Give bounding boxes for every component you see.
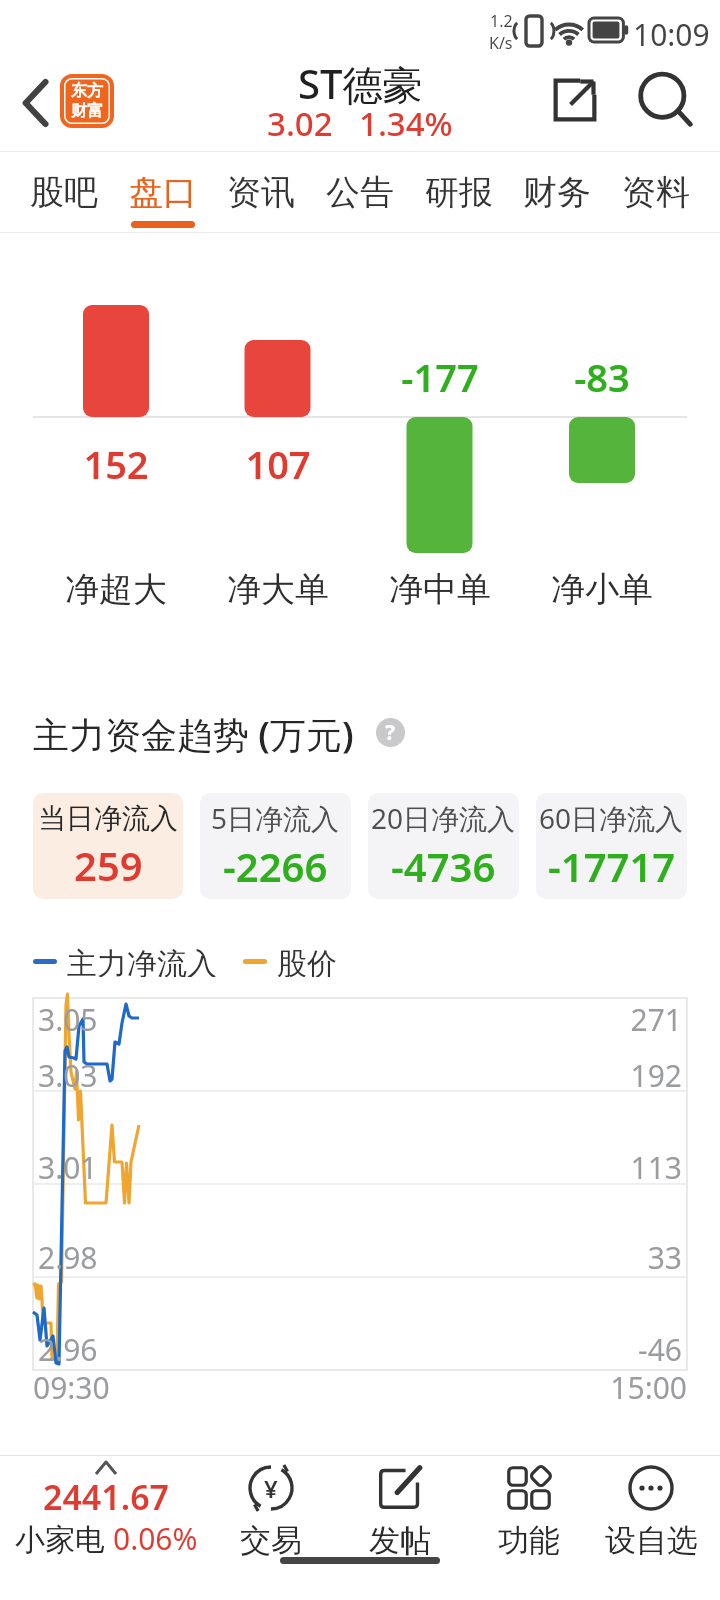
button[interactable]: 研报 <box>425 151 493 233</box>
staticText: 净中单 <box>360 568 520 611</box>
button[interactable]: 当日净流入 <box>33 793 183 899</box>
button[interactable]: 设自选 <box>592 1465 710 1560</box>
staticText: 净超大 <box>36 568 196 611</box>
staticText: 5日净流入 <box>211 799 340 837</box>
staticText: 10:09 <box>633 14 710 55</box>
button[interactable]: 5日净流入 <box>200 793 351 899</box>
staticText: 小家电 <box>15 1518 113 1559</box>
staticText: -4736 <box>391 839 496 893</box>
staticText: 净小单 <box>522 568 682 611</box>
button[interactable]: 资料 <box>622 151 690 233</box>
staticText: 20日净流入 <box>371 799 516 837</box>
staticText: 公告 <box>326 171 394 214</box>
staticText: 09:30 <box>33 1367 110 1408</box>
staticText: ? <box>385 718 396 747</box>
staticText: 3.01 <box>38 1147 98 1188</box>
button[interactable]: 2441.67 <box>0 1456 212 1566</box>
staticText: 0.06% <box>113 1518 198 1559</box>
staticText: 盘口 <box>129 171 197 214</box>
button[interactable]: 60日净流入 <box>536 793 687 899</box>
staticText: 271 <box>562 999 682 1040</box>
button[interactable]: 东方 <box>60 74 114 128</box>
staticText: 净大单 <box>198 568 358 611</box>
button[interactable]: 功能 <box>470 1465 588 1560</box>
staticText: 113 <box>562 1147 682 1188</box>
staticText: 当日净流入 <box>38 801 178 836</box>
staticText: K/s <box>489 32 513 54</box>
staticText: -2266 <box>223 839 328 893</box>
staticText: 152 <box>36 438 196 490</box>
button[interactable]: ? <box>376 718 405 747</box>
staticText: 33 <box>562 1237 682 1278</box>
button[interactable]: 发帖 <box>341 1465 459 1560</box>
staticText: 财务 <box>523 171 591 214</box>
button[interactable]: 财务 <box>523 151 591 233</box>
button[interactable]: ¥ <box>212 1465 330 1560</box>
button[interactable] <box>8 68 60 138</box>
staticText: 交易 <box>240 1521 302 1560</box>
staticText: ¥ <box>264 1472 278 1505</box>
staticText: 股吧 <box>30 171 98 214</box>
staticText: 东方 <box>71 81 103 101</box>
staticText: 3.02 <box>267 101 333 146</box>
button[interactable] <box>633 68 697 132</box>
staticText: -83 <box>522 351 682 403</box>
button[interactable]: 股吧 <box>30 151 98 233</box>
staticText: 15:00 <box>567 1367 687 1408</box>
staticText: 主力净流入 <box>67 945 217 977</box>
button[interactable]: 20日净流入 <box>368 793 519 899</box>
staticText: 功能 <box>498 1521 560 1560</box>
staticText: 192 <box>562 1055 682 1096</box>
staticText: 1.2 <box>490 10 513 32</box>
button[interactable]: 资讯 <box>227 151 295 233</box>
button[interactable]: 盘口 <box>129 151 197 233</box>
staticText: 股价 <box>277 945 337 977</box>
staticText: -46 <box>562 1329 682 1370</box>
staticText: 1.34% <box>359 101 453 146</box>
staticText: 研报 <box>425 171 493 214</box>
staticText: 2441.67 <box>0 1474 212 1520</box>
staticText: ST德豪 <box>298 56 423 111</box>
staticText: 资料 <box>622 171 690 214</box>
staticText: 财富 <box>71 101 103 121</box>
staticText: 资讯 <box>227 171 295 214</box>
staticText: -177 <box>360 351 520 403</box>
staticText: -17717 <box>548 839 676 893</box>
staticText: 发帖 <box>369 1521 431 1560</box>
staticText: 3.03 <box>38 1055 98 1096</box>
staticText: 60日净流入 <box>539 799 684 837</box>
staticText: 107 <box>198 438 358 490</box>
staticText: 259 <box>74 838 143 892</box>
staticText: 设自选 <box>605 1521 698 1560</box>
button[interactable] <box>543 68 607 132</box>
staticText: 2.96 <box>38 1329 98 1370</box>
staticText: 主力资金趋势 (万元) <box>33 710 354 759</box>
staticText: 2.98 <box>38 1237 98 1278</box>
button[interactable]: 公告 <box>326 151 394 233</box>
staticText: 3.05 <box>38 999 98 1040</box>
